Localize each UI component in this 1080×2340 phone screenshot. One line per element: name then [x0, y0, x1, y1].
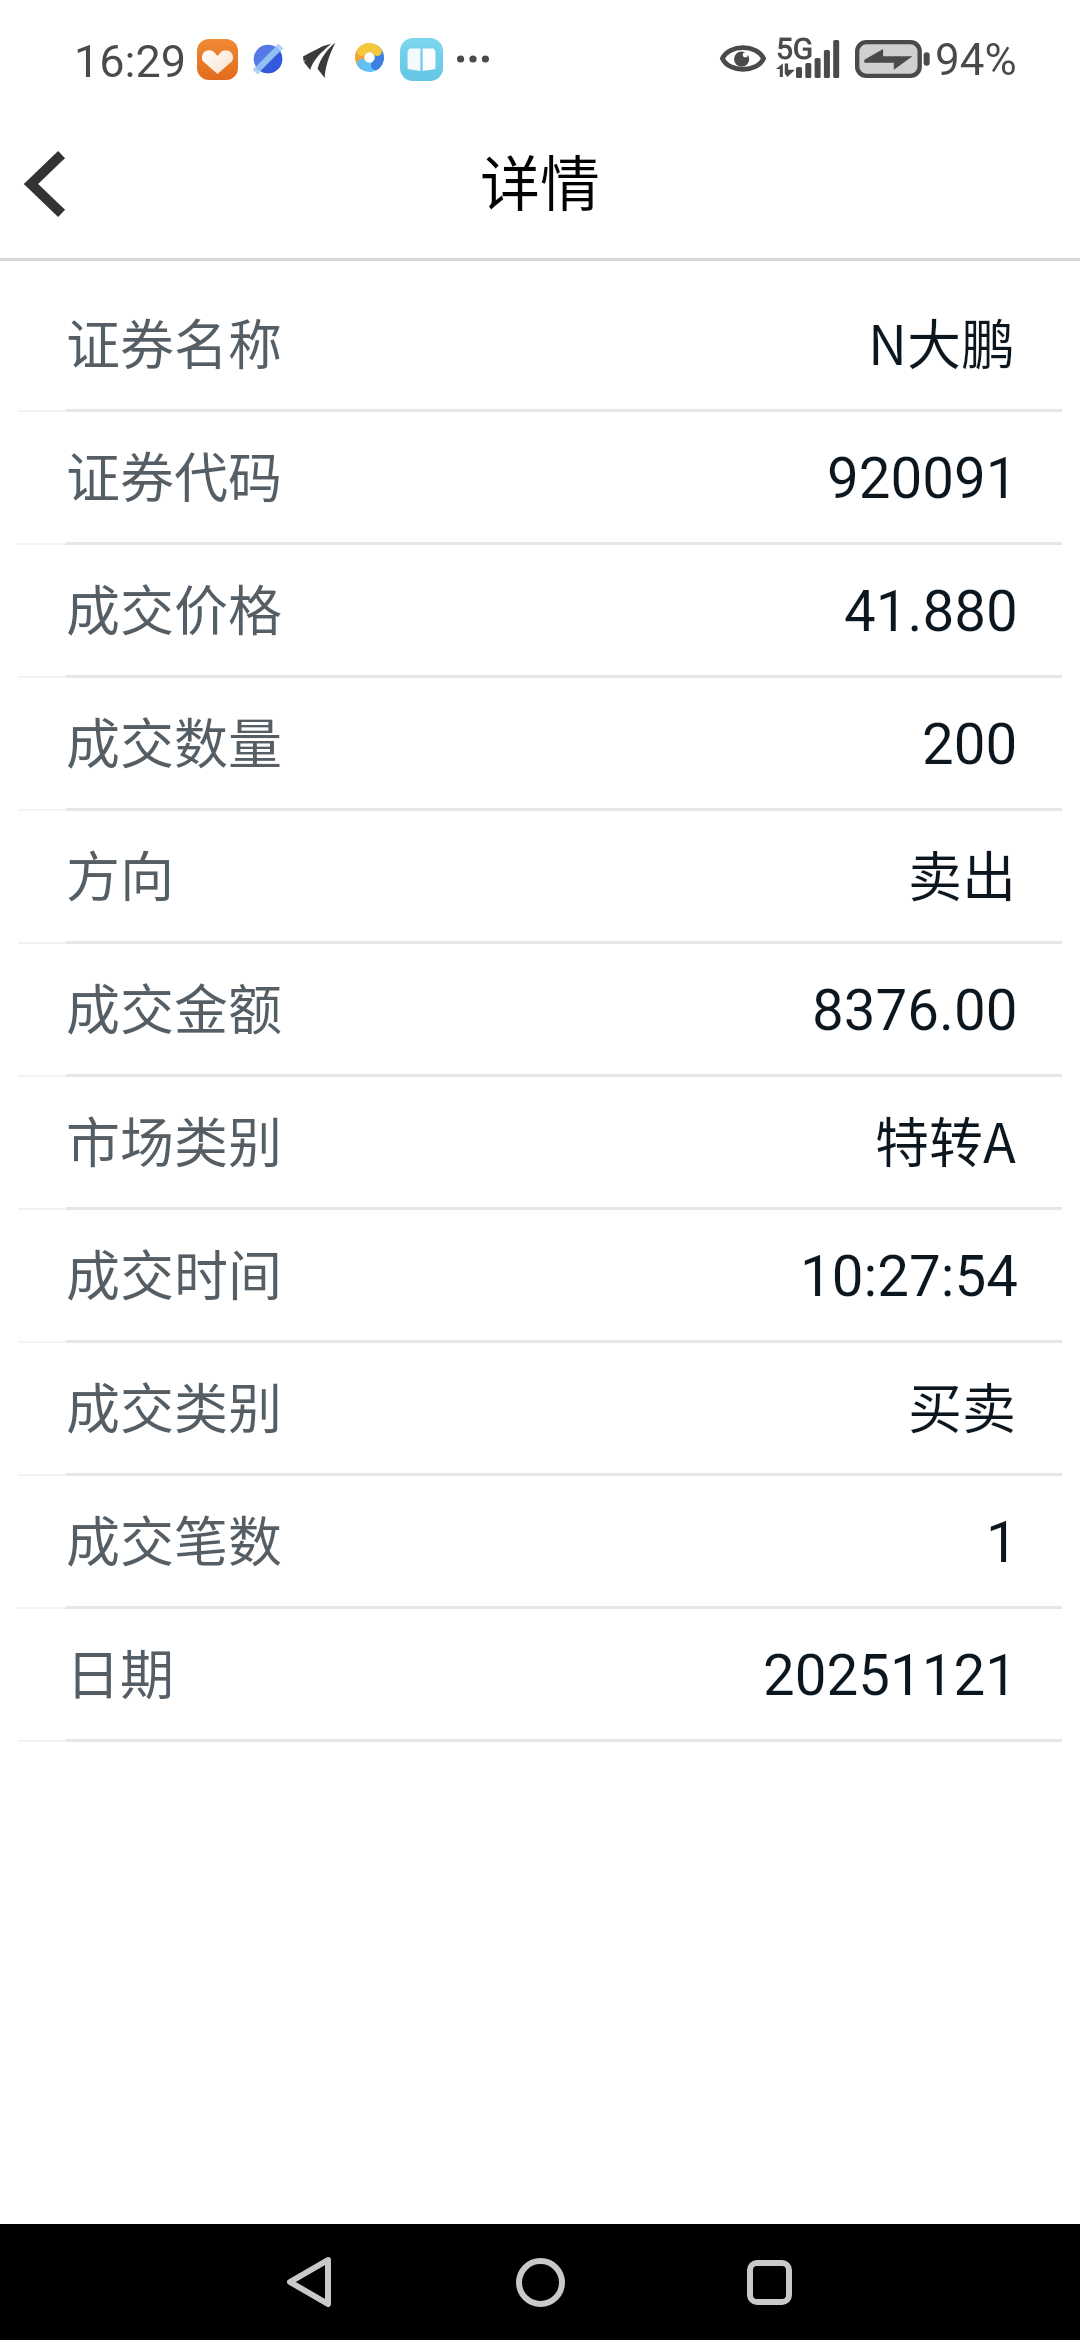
staticText: 成交笔数 [66, 1499, 282, 1577]
staticText: 证券名称 [66, 302, 282, 380]
staticText: 94% [935, 34, 1017, 86]
button[interactable]: Back [0, 111, 110, 257]
staticText: N大鹏 [868, 302, 1016, 380]
button[interactable]: 证券名称 [0, 279, 1080, 409]
button[interactable]: 成交时间 [0, 1210, 1080, 1340]
button[interactable]: 成交金额 [0, 944, 1080, 1074]
staticText: 方向 [66, 834, 174, 912]
button[interactable]: 市场类别 [0, 1077, 1080, 1207]
button[interactable]: 成交价格 [0, 545, 1080, 675]
button[interactable]: 成交笔数 [0, 1476, 1080, 1606]
staticText: 详情 [480, 136, 600, 223]
staticText: 卖出 [908, 834, 1016, 912]
button[interactable]: Back [234, 2224, 384, 2340]
staticText: 市场类别 [66, 1100, 282, 1178]
staticText: 成交类别 [66, 1366, 282, 1444]
button[interactable]: 成交数量 [0, 678, 1080, 808]
staticText: 成交价格 [66, 568, 282, 646]
button[interactable]: 证券代码 [0, 412, 1080, 542]
staticText: 8376.00 [812, 978, 1018, 1044]
staticText: 16:29 [74, 35, 187, 88]
staticText: 41.880 [844, 579, 1018, 645]
staticText: 成交金额 [66, 967, 282, 1045]
staticText: 1 [986, 1510, 1018, 1576]
staticText: 特转A [875, 1100, 1016, 1178]
button[interactable]: 方向 [0, 811, 1080, 941]
button[interactable]: Home [465, 2224, 615, 2340]
staticText: 920091 [827, 446, 1018, 512]
staticText: 20251121 [763, 1643, 1018, 1709]
staticText: 买卖 [908, 1366, 1016, 1444]
button[interactable]: 日期 [0, 1609, 1080, 1739]
staticText: 成交数量 [66, 701, 282, 779]
staticText: 成交时间 [66, 1233, 282, 1311]
staticText: 日期 [66, 1632, 174, 1710]
staticText: 10:27:54 [800, 1244, 1018, 1310]
staticText: 5G [776, 31, 814, 66]
button[interactable]: 成交类别 [0, 1343, 1080, 1473]
staticText: 200 [922, 712, 1018, 778]
button[interactable]: Recents [694, 2224, 844, 2340]
staticText: 证券代码 [66, 435, 282, 513]
